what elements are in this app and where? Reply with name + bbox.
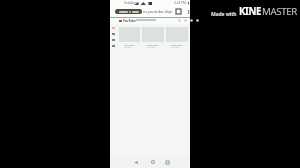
button[interactable]: Header action [190,19,193,22]
button[interactable]: Side nav 2 [110,37,117,43]
button[interactable] [142,27,164,48]
staticText: YouTube [123,19,136,23]
button[interactable]: Side nav 1 [110,31,117,37]
staticText: m.youtube.com [143,9,173,14]
button[interactable]: Home [149,158,157,166]
staticText: KINE [239,5,262,18]
button[interactable]: More options [185,8,192,15]
button[interactable]: Address bar [115,9,142,14]
button[interactable]: Header action [196,19,199,22]
button[interactable] [119,27,140,48]
staticText: Vodafone [124,1,139,5]
button[interactable]: Header action [178,19,181,22]
button[interactable]: Back [132,158,140,166]
staticText: Made with [211,11,237,18]
button[interactable]: Header action [184,19,187,22]
button[interactable]: Side nav 0 [110,25,117,31]
staticText: 3:24 PM ▮ [174,1,190,5]
button[interactable]: Tabs [176,9,181,14]
button[interactable]: Recents [163,158,171,166]
staticText: /?g [165,9,171,14]
button[interactable]: Side nav 3 [110,43,117,49]
button[interactable]: Search [136,19,156,21]
button[interactable] [166,27,188,48]
staticText: MASTER [262,5,297,18]
